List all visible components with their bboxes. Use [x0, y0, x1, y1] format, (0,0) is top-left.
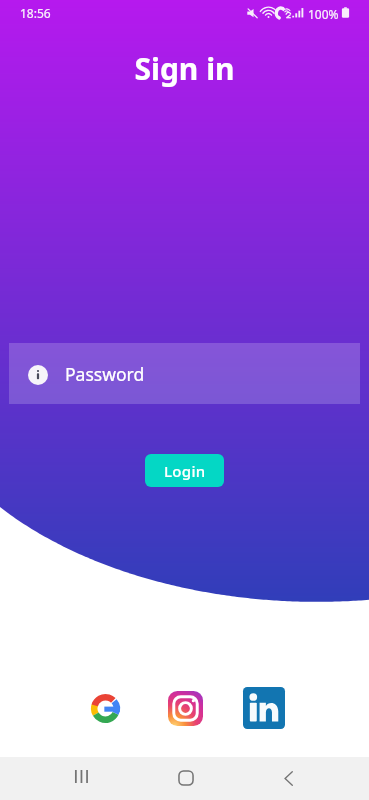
button[interactable]: Password: [9, 343, 360, 404]
staticText: 18:56: [20, 5, 51, 21]
button[interactable]: Recent apps: [57, 755, 105, 798]
button[interactable]: Home: [162, 756, 210, 799]
staticText: 100%: [308, 6, 339, 22]
button[interactable]: Back: [264, 757, 312, 800]
staticText: Password: [65, 362, 145, 386]
staticText: Login: [164, 461, 206, 481]
staticText: Sign in: [0, 48, 369, 89]
button[interactable]: Sign in with Google: [83, 686, 128, 730]
button[interactable]: Login: [145, 454, 224, 487]
button[interactable]: Sign in with LinkedIn: [242, 686, 286, 730]
button[interactable]: Sign in with Instagram: [163, 686, 207, 730]
